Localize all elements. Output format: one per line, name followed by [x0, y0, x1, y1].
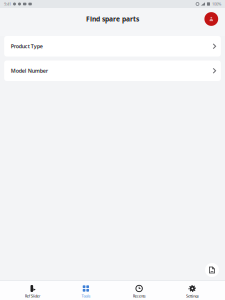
staticText: Ref Slider [25, 293, 41, 298]
staticText: Tools [81, 293, 90, 298]
staticText: Settings [186, 293, 199, 298]
button[interactable]: Account [203, 10, 220, 27]
staticText: 9:41 [4, 1, 11, 7]
staticText: Product Type [11, 43, 43, 50]
button[interactable]: Settings [166, 283, 219, 300]
staticText: 100% [212, 1, 221, 7]
staticText: Find spare parts [86, 15, 139, 23]
button[interactable]: Model Number [4, 60, 221, 81]
staticText: Model Number [11, 67, 48, 74]
button[interactable]: Documents [204, 262, 220, 278]
button[interactable]: Product Type [4, 36, 221, 56]
button[interactable]: Ref Slider [6, 283, 59, 300]
button[interactable]: Recents [112, 283, 166, 300]
button[interactable]: Tools [59, 283, 112, 300]
staticText: Recents [133, 293, 146, 298]
